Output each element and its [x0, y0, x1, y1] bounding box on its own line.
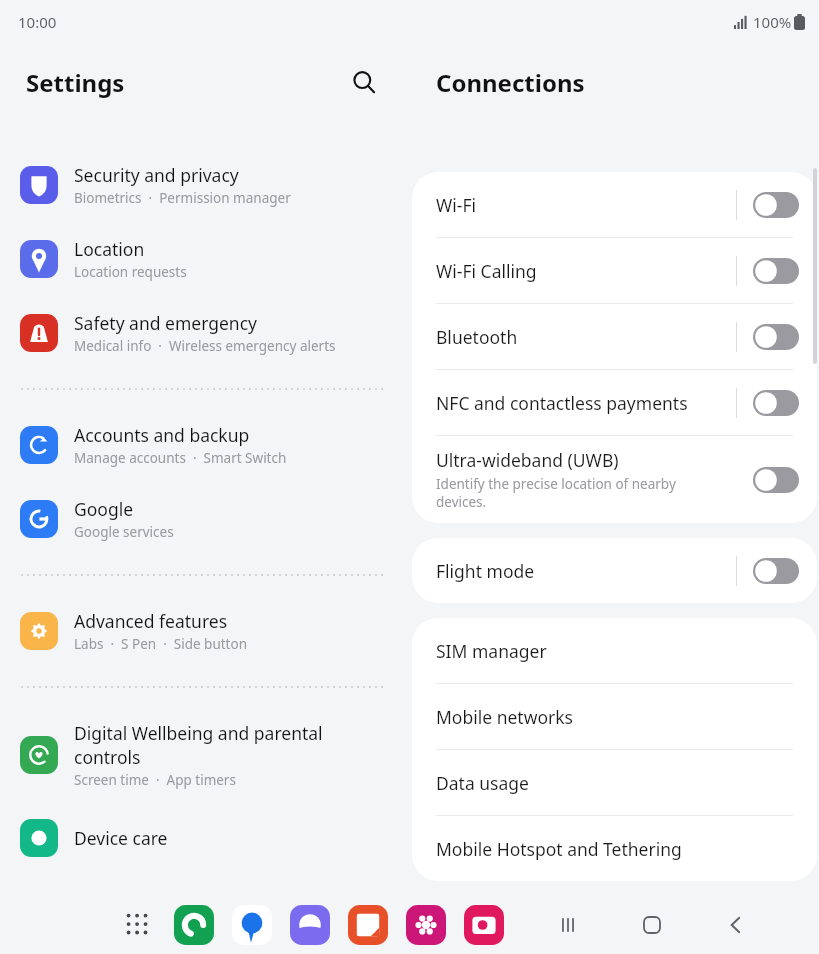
button[interactable]: Toggle	[753, 558, 799, 584]
staticText: Wi-Fi	[436, 193, 477, 217]
button[interactable]: Recents	[547, 904, 589, 946]
button[interactable]: Security and privacy	[0, 158, 410, 212]
button[interactable]: Ultra-wideband (UWB)	[412, 436, 817, 523]
button[interactable]: Advanced features	[0, 604, 410, 658]
staticText: Location	[74, 237, 145, 261]
button[interactable]: Back	[715, 904, 757, 946]
button[interactable]: Device care	[0, 814, 410, 862]
staticText: Accounts and backup	[74, 423, 250, 447]
staticText: Connections	[436, 66, 585, 99]
staticText: 100%	[753, 12, 792, 32]
staticText: Ultra-wideband (UWB)	[436, 448, 619, 472]
button[interactable]: Search	[344, 62, 384, 102]
staticText: Manage accounts · Smart Switch	[74, 449, 287, 467]
button[interactable]: Apps	[118, 905, 158, 945]
button[interactable]: Accounts and backup	[0, 418, 410, 472]
button[interactable]: Digital Wellbeing and parental	[0, 716, 410, 794]
button[interactable]: Mobile networks	[412, 684, 817, 749]
staticText: Advanced features	[74, 609, 228, 633]
button[interactable]: NFC and contactless payments	[412, 370, 817, 435]
staticText: Mobile networks	[436, 705, 573, 729]
staticText: Google	[74, 497, 134, 521]
staticText: SIM manager	[436, 639, 547, 663]
button[interactable]: Toggle	[753, 192, 799, 218]
button[interactable]: Home	[631, 904, 673, 946]
staticText: 10:00	[18, 12, 57, 32]
button[interactable]: Camera	[462, 903, 506, 947]
button[interactable]: Flight mode	[412, 538, 817, 603]
button[interactable]: Toggle	[753, 390, 799, 416]
button[interactable]: Toggle	[753, 258, 799, 284]
button[interactable]: SIM manager	[412, 618, 817, 683]
staticText: Google services	[74, 523, 174, 541]
button[interactable]: Wi-Fi Calling	[412, 238, 817, 303]
button[interactable]: Phone	[172, 903, 216, 947]
staticText: NFC and contactless payments	[436, 391, 688, 415]
staticText: Labs · S Pen · Side button	[74, 635, 248, 653]
staticText: Biometrics · Permission manager	[74, 189, 291, 207]
staticText: Safety and emergency	[74, 311, 257, 335]
button[interactable]: Notes	[346, 903, 390, 947]
staticText: Settings	[26, 66, 344, 99]
staticText: Screen time · App timers	[74, 771, 236, 789]
staticText: controls	[74, 745, 141, 769]
button[interactable]: Location	[0, 232, 410, 286]
button[interactable]: Google	[0, 492, 410, 546]
staticText: Device care	[74, 826, 168, 850]
button[interactable]: Messages	[230, 903, 274, 947]
staticText: Wi-Fi Calling	[436, 259, 537, 283]
staticText: Flight mode	[436, 559, 535, 583]
staticText: Security and privacy	[74, 163, 239, 187]
button[interactable]: Internet	[288, 903, 332, 947]
button[interactable]: Toggle	[753, 324, 799, 350]
staticText: Data usage	[436, 771, 529, 795]
staticText: Medical info · Wireless emergency alerts	[74, 337, 336, 355]
button[interactable]: Wi-Fi	[412, 172, 817, 237]
staticText: Mobile Hotspot and Tethering	[436, 837, 682, 861]
button[interactable]: Safety and emergency	[0, 306, 410, 360]
button[interactable]: Toggle	[753, 467, 799, 493]
staticText: Location requests	[74, 263, 187, 281]
staticText: Digital Wellbeing and parental	[74, 721, 323, 745]
button[interactable]: Data usage	[412, 750, 817, 815]
button[interactable]: Gallery	[404, 903, 448, 947]
button[interactable]: Bluetooth	[412, 304, 817, 369]
button[interactable]: Mobile Hotspot and Tethering	[412, 816, 817, 881]
staticText: Bluetooth	[436, 325, 518, 349]
staticText: Identify the precise location of nearby …	[436, 475, 676, 511]
